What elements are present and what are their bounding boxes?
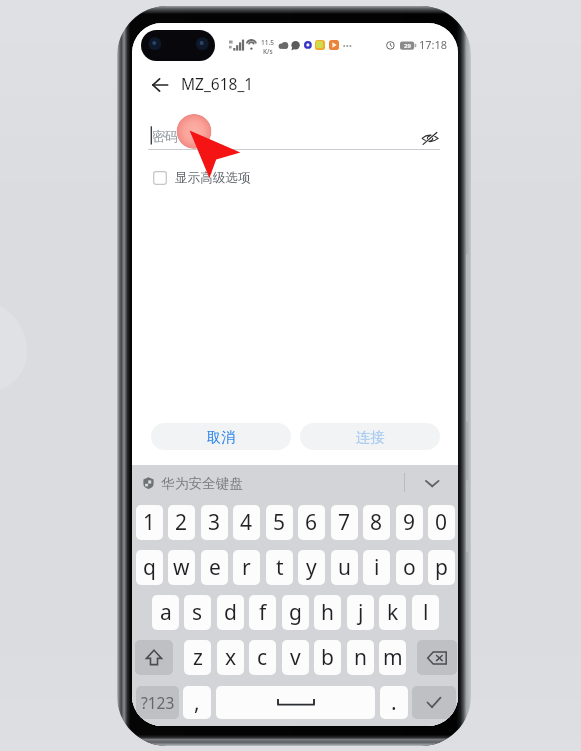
staticText: y [306, 553, 317, 582]
staticText: 5 [273, 508, 286, 537]
button[interactable]: c [249, 640, 276, 675]
staticText: f [259, 598, 267, 627]
staticText: o [403, 553, 416, 582]
staticText: 取消 [207, 428, 236, 446]
button[interactable]: f [249, 595, 276, 630]
staticText: ?123 [141, 692, 175, 713]
button[interactable]: Back [140, 65, 180, 105]
staticText: t [276, 553, 284, 582]
button[interactable]: , [183, 686, 211, 719]
staticText: h [321, 598, 334, 627]
button[interactable]: 6 [298, 505, 325, 540]
staticText: 显示高级选项 [175, 170, 251, 186]
staticText: K/s [263, 47, 273, 56]
button[interactable]: 4 [233, 505, 260, 540]
button[interactable]: 3 [201, 505, 228, 540]
staticText: i [374, 553, 380, 582]
button[interactable]: j [347, 595, 374, 630]
button[interactable]: o [396, 550, 423, 585]
button[interactable]: d [217, 595, 244, 630]
button[interactable]: 连接 [300, 423, 440, 450]
staticText: r [242, 553, 251, 582]
button[interactable]: z [184, 640, 211, 675]
staticText: z [193, 643, 203, 672]
staticText: b [321, 643, 334, 672]
staticText: x [225, 643, 237, 672]
button[interactable]: l [412, 595, 439, 630]
staticText: 密码 [152, 128, 178, 144]
button[interactable]: 华为安全键盘 [138, 470, 244, 496]
staticText: p [435, 553, 448, 582]
button[interactable]: t [266, 550, 293, 585]
button[interactable]: 5 [266, 505, 293, 540]
staticText: 4 [240, 508, 253, 537]
button[interactable]: r [233, 550, 260, 585]
button[interactable]: i [363, 550, 390, 585]
staticText: j [358, 598, 364, 627]
staticText: l [423, 598, 429, 627]
button[interactable] [412, 686, 456, 719]
staticText: v [290, 643, 301, 672]
staticText: d [224, 598, 237, 627]
staticText: 6 [305, 508, 318, 537]
button[interactable]: s [184, 595, 211, 630]
button[interactable]: 1 [136, 505, 163, 540]
staticText: 7 [338, 508, 351, 537]
staticText: 17:18 [419, 37, 448, 52]
button[interactable]: 9 [396, 505, 423, 540]
button[interactable]: h [314, 595, 341, 630]
staticText: e [209, 553, 221, 582]
button[interactable]: m [379, 640, 406, 675]
button[interactable]: w [168, 550, 195, 585]
staticText: 8 [370, 508, 383, 537]
staticText: s [192, 598, 203, 627]
button[interactable]: 7 [331, 505, 358, 540]
staticText: 0 [435, 508, 448, 537]
button[interactable]: n [347, 640, 374, 675]
button[interactable]: q [136, 550, 163, 585]
staticText: 华为安全键盘 [161, 475, 244, 492]
staticText: 2 [175, 508, 188, 537]
button[interactable]: 显示高级选项 [153, 167, 251, 188]
button[interactable]: 8 [363, 505, 390, 540]
button[interactable]: b [314, 640, 341, 675]
staticText: 11.5 [261, 38, 274, 47]
button[interactable]: 2 [168, 505, 195, 540]
staticText: a [160, 598, 172, 627]
button[interactable]: . [380, 686, 408, 719]
button[interactable]: Show password [408, 117, 452, 159]
staticText: 连接 [356, 428, 385, 446]
button[interactable]: v [282, 640, 309, 675]
staticText: g [289, 598, 302, 627]
staticText: n [354, 643, 367, 672]
button[interactable]: 0 [428, 505, 455, 540]
button[interactable]: u [331, 550, 358, 585]
button[interactable] [135, 640, 173, 675]
button[interactable]: a [152, 595, 179, 630]
staticText: 3 [208, 508, 221, 537]
button[interactable]: e [201, 550, 228, 585]
staticText: k [387, 598, 399, 627]
staticText: m [383, 643, 403, 672]
button[interactable]: g [282, 595, 309, 630]
button[interactable]: 取消 [151, 423, 291, 450]
staticText: . [391, 688, 397, 717]
staticText: u [338, 553, 351, 582]
staticText: 9 [403, 508, 416, 537]
button[interactable]: ?123 [136, 686, 179, 719]
button[interactable]: Hide keyboard [416, 468, 448, 498]
staticText: 29 [404, 42, 411, 50]
button[interactable]: p [428, 550, 455, 585]
staticText: c [257, 643, 268, 672]
staticText: MZ_618_1 [181, 73, 254, 94]
staticText: q [143, 553, 156, 582]
staticText: 1 [143, 508, 156, 537]
button[interactable]: x [217, 640, 244, 675]
staticText: w [173, 553, 190, 582]
button[interactable]: y [298, 550, 325, 585]
button[interactable] [216, 686, 375, 719]
button[interactable]: k [379, 595, 406, 630]
staticText: , [194, 688, 200, 717]
button[interactable] [417, 640, 457, 675]
